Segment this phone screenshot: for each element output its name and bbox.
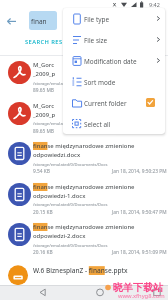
staticText: /storage/emulated/0/Downlo bbox=[33, 121, 90, 127]
staticText: finanse międzynarodowe zmienione bbox=[33, 223, 135, 231]
staticText: odpowiedzi.docx bbox=[33, 151, 81, 159]
staticText: Jan 18, 2014, 9:51:09 PM bbox=[112, 249, 167, 256]
staticText: 9.54 KB bbox=[33, 168, 50, 175]
staticText: File type bbox=[84, 15, 109, 24]
staticText: odpowiedzi-2.docx bbox=[33, 232, 86, 240]
staticText: /storage/emulated/0/Downlo bbox=[33, 81, 90, 87]
staticText: W.6 BiznesplanZ - finanse.pptx bbox=[33, 266, 128, 275]
staticText: SEARCH RESULTS bbox=[25, 38, 78, 46]
staticText: Jan 18, 2014, 9:50:23 PM bbox=[112, 168, 167, 175]
staticText: M_Gorc bbox=[33, 61, 55, 69]
staticText: finan bbox=[31, 17, 47, 26]
staticText: 20.16 KB bbox=[33, 249, 53, 256]
staticText: Jan 18, 2014, 9:50:47 PM bbox=[112, 209, 167, 216]
staticText: 20.15 KB bbox=[33, 209, 53, 216]
staticText: /storage/emulated/0/Documents/Docs bbox=[33, 202, 108, 208]
staticText: Sort mode bbox=[84, 78, 116, 87]
staticText: /storage/emulated/0/Documents/Docs bbox=[33, 243, 108, 249]
staticText: Select all bbox=[84, 120, 111, 129]
staticText: 89.65 MB bbox=[33, 87, 54, 94]
staticText: 9:42 bbox=[149, 1, 160, 8]
staticText: /storage/emulated/0/Documents/Docs bbox=[33, 162, 108, 168]
staticText: File size bbox=[84, 36, 108, 45]
staticText: www.xfhyg8.com bbox=[118, 292, 165, 300]
staticText: 89.65 MB bbox=[33, 128, 54, 135]
staticText: Current folder bbox=[84, 99, 127, 108]
staticText: finanse międzynarodowe zmienione bbox=[33, 142, 135, 150]
staticText: finanse międzynarodowe zmienione bbox=[33, 183, 135, 191]
staticText: odpowiedzi-1.docx bbox=[33, 192, 86, 200]
staticText: _2009_p bbox=[33, 111, 56, 119]
staticText: _2009_p bbox=[33, 70, 56, 78]
staticText: 晓羊下载站 bbox=[113, 281, 163, 294]
staticText: Modification date bbox=[84, 57, 137, 66]
staticText: M_Gorc bbox=[33, 102, 55, 110]
